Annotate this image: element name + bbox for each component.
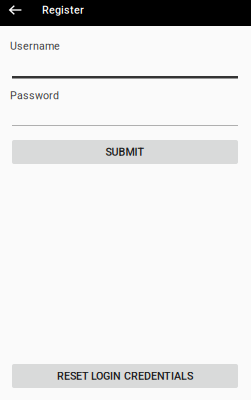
button[interactable]: RESET LOGIN CREDENTIALS (12, 364, 238, 388)
staticText: Register (42, 4, 84, 16)
staticText: RESET LOGIN CREDENTIALS (57, 370, 193, 382)
staticText: Password (10, 89, 59, 102)
staticText: Username (10, 40, 60, 52)
staticText: SUBMIT (105, 146, 144, 158)
button[interactable]: SUBMIT (12, 140, 238, 164)
button[interactable]: Back (0, 0, 31, 20)
